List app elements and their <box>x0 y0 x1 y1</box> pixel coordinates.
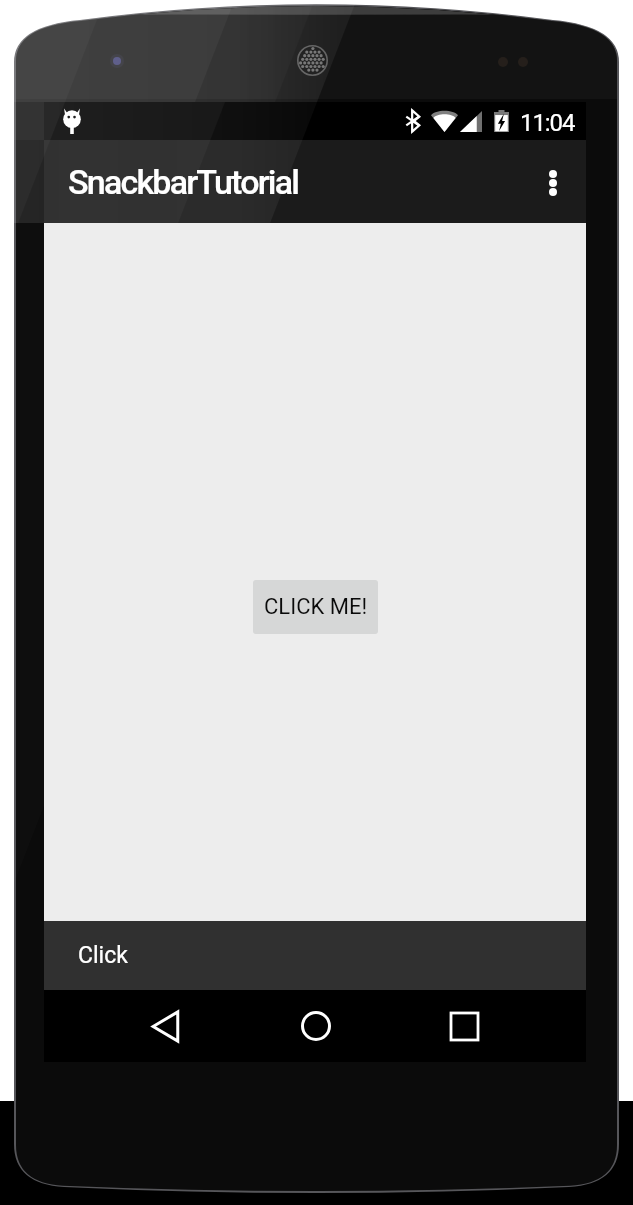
staticText: CLICK ME! <box>264 594 368 620</box>
staticText: Click <box>78 942 128 969</box>
button[interactable]: Click <box>44 921 586 990</box>
button[interactable]: Back <box>90 990 241 1062</box>
button[interactable]: CLICK ME! <box>253 580 378 634</box>
staticText: 11:04 <box>520 109 575 137</box>
button[interactable]: Recent apps <box>389 990 540 1062</box>
button[interactable]: More options <box>520 140 586 223</box>
button[interactable]: Home <box>240 990 391 1062</box>
staticText: SnackbarTutorial <box>68 162 299 202</box>
